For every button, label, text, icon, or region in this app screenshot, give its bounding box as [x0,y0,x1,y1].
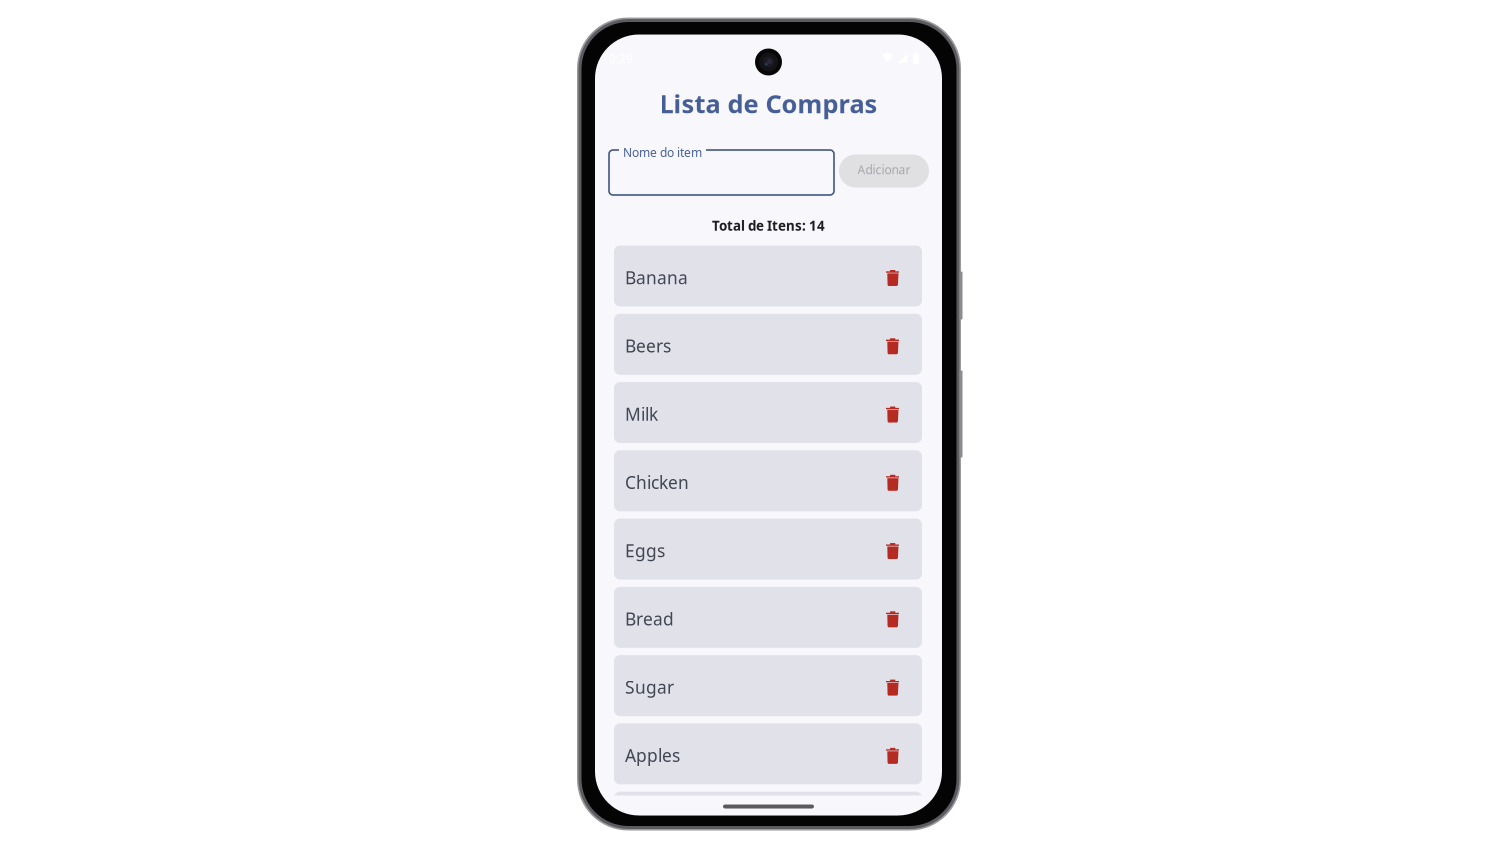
staticText: Milk [625,402,658,425]
staticText: Adicionar [857,161,910,177]
staticText: Bread [625,607,674,630]
staticText: Rice [625,812,658,835]
button[interactable]: Nome do item [609,150,834,195]
staticText: Lista de Compras [659,87,877,120]
staticText: Total de Itens: 14 [712,217,825,234]
button[interactable]: Adicionar [839,154,929,187]
staticText: Banana [625,266,688,289]
staticText: Sugar [625,676,674,699]
button[interactable]: Remover Rice [886,792,899,853]
button[interactable]: Remover Beers [886,314,899,375]
button[interactable]: Remover Eggs [886,519,899,580]
button[interactable]: Remover Chicken [886,450,899,511]
staticText: Eggs [625,539,665,562]
staticText: Nome do item [623,144,702,160]
button[interactable]: Remover Sugar [886,655,899,716]
staticText: Chicken [625,471,689,494]
button[interactable]: Remover Milk [886,382,899,443]
button[interactable]: Remover Banana [886,245,899,306]
staticText: Apples [625,744,680,767]
button[interactable]: Remover Apples [886,723,899,784]
staticText: Beers [625,334,671,357]
button[interactable]: Remover Bread [886,587,899,648]
